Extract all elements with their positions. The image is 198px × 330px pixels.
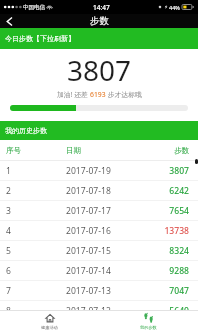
staticText: 序号 (6, 146, 66, 155)
button[interactable]: 2 (0, 181, 198, 201)
staticText: 2017-07-12 (66, 305, 169, 317)
staticText: 44% (169, 4, 180, 11)
staticText: 7654 (169, 205, 189, 217)
staticText: 6 (6, 265, 66, 277)
staticText: 健康活动 (41, 325, 58, 330)
staticText: 9288 (169, 265, 189, 277)
staticText: 8324 (169, 245, 189, 257)
staticText: 2017-07-11 (66, 321, 169, 330)
staticText: 3807 (169, 165, 189, 177)
staticText: 我的步数 (140, 325, 157, 330)
staticText: 2017-07-17 (66, 205, 169, 217)
button[interactable]: Back (0, 14, 19, 28)
staticText: 2017-07-15 (66, 245, 169, 257)
staticText: 2017-07-18 (66, 185, 169, 197)
staticText: 8 (6, 305, 66, 317)
staticText: 今日步数【下拉刷新】 (5, 34, 75, 43)
staticText: 7 (6, 285, 66, 297)
staticText: 6193 (90, 90, 106, 99)
staticText: 步才达标哦 (106, 90, 142, 99)
staticText: 加油! 还差 (57, 90, 90, 99)
staticText: 2017-07-13 (66, 285, 169, 297)
staticText: 2017-07-14 (66, 265, 169, 277)
staticText: 3807 (0, 51, 198, 89)
staticText: 2 (6, 185, 66, 197)
button[interactable]: 3 (0, 201, 198, 221)
button[interactable]: 我的步数 (99, 311, 198, 330)
button[interactable]: 7 (0, 281, 198, 301)
staticText: 步数 (90, 15, 109, 27)
staticText: 中国电信 (23, 4, 45, 11)
staticText: 5640 (169, 305, 189, 317)
staticText: 9 (6, 321, 66, 330)
button[interactable]: 1 (0, 161, 198, 181)
staticText: 6242 (169, 185, 189, 197)
button[interactable]: 6 (0, 261, 198, 281)
staticText: 我的历史步数 (5, 126, 47, 135)
button[interactable]: 8 (0, 301, 198, 321)
staticText: 2017-07-16 (66, 225, 164, 237)
staticText: 13738 (164, 225, 189, 237)
staticText: 14:47 (93, 3, 110, 12)
staticText: 1 (6, 165, 66, 177)
button[interactable]: 9 (0, 321, 198, 330)
staticText: 3 (6, 205, 66, 217)
staticText: 7047 (169, 285, 189, 297)
staticText: 5 (6, 245, 66, 257)
button[interactable]: 5 (0, 241, 198, 261)
button[interactable]: 4 (0, 221, 198, 241)
button[interactable]: 健康活动 (0, 311, 99, 330)
staticText: 日期 (66, 146, 174, 155)
staticText: 2017-07-19 (66, 165, 169, 177)
staticText: 4 (6, 225, 66, 237)
staticText: 步数 (174, 146, 189, 155)
